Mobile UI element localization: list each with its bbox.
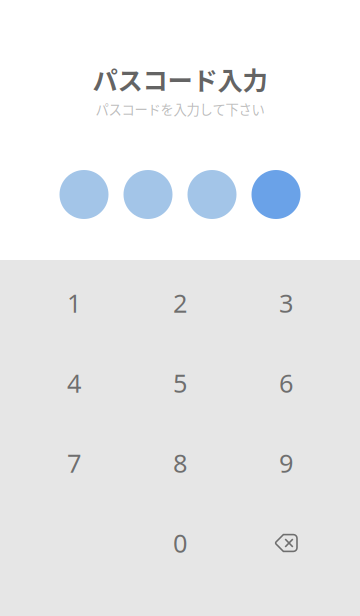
staticText: 0	[173, 526, 187, 560]
staticText: 2	[173, 286, 187, 320]
button[interactable]: 6	[233, 343, 339, 423]
button[interactable]: 5	[127, 343, 233, 423]
staticText: パスコード入力	[92, 61, 267, 97]
staticText: 6	[279, 366, 293, 400]
staticText: 5	[173, 366, 187, 400]
button[interactable]: Delete	[233, 503, 339, 583]
button[interactable]: 1	[21, 263, 127, 343]
button[interactable]: 0	[127, 503, 233, 583]
button[interactable]: 3	[233, 263, 339, 343]
button[interactable]: 8	[127, 423, 233, 503]
staticText: 1	[67, 286, 81, 320]
button[interactable]: 2	[127, 263, 233, 343]
button[interactable]: 7	[21, 423, 127, 503]
button[interactable]: 9	[233, 423, 339, 503]
staticText: 4	[67, 366, 81, 400]
button[interactable]: 4	[21, 343, 127, 423]
staticText: 7	[67, 446, 81, 480]
staticText: 9	[279, 446, 293, 480]
staticText: 3	[279, 286, 293, 320]
staticText: パスコードを入力して下さい	[95, 99, 264, 119]
staticText: 8	[173, 446, 187, 480]
